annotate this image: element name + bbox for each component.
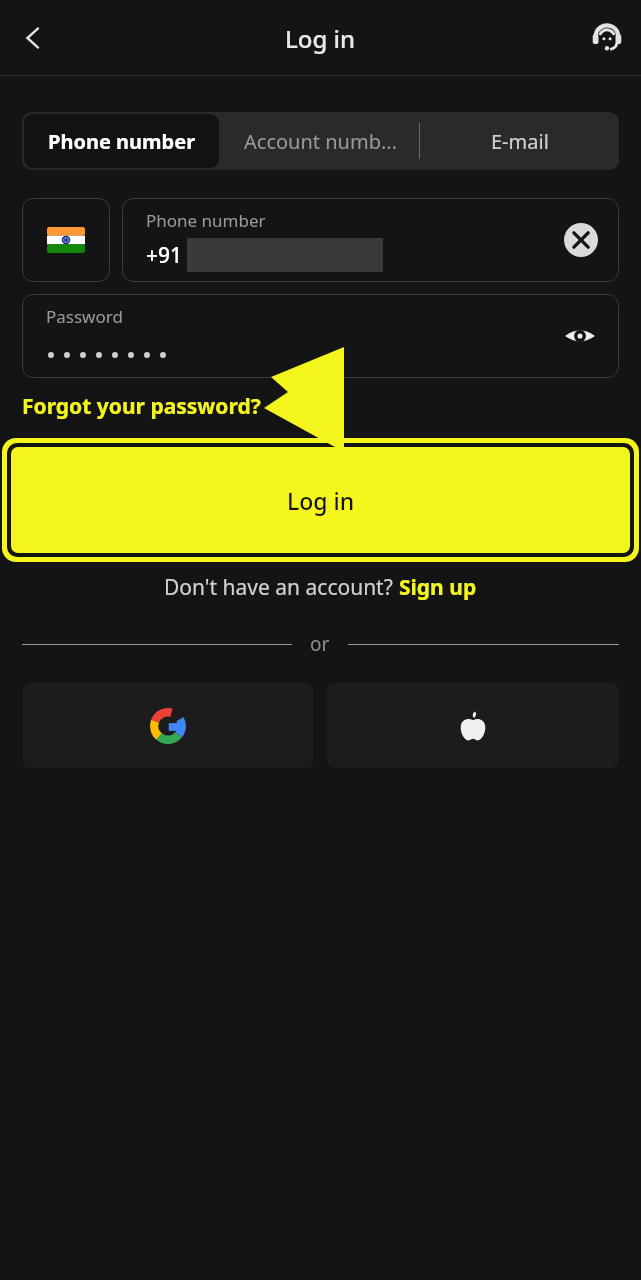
staticText: or: [310, 631, 330, 657]
button[interactable]: Account numb...: [221, 112, 420, 170]
button[interactable]: Back: [6, 11, 60, 65]
button[interactable]: Forgot your password?: [22, 392, 261, 421]
button[interactable]: Sign in with Google: [22, 683, 314, 768]
button[interactable]: Sign in with Apple: [327, 683, 619, 768]
button[interactable]: Password: [22, 294, 619, 378]
staticText: Don't have an account?: [164, 573, 399, 602]
staticText: Account numb...: [244, 128, 398, 155]
button[interactable]: E-mail: [420, 112, 619, 170]
button[interactable]: Phone number: [122, 198, 619, 282]
button[interactable]: Log in: [11, 447, 630, 553]
staticText: +91: [146, 241, 183, 270]
button[interactable]: Clear phone number: [561, 220, 601, 260]
staticText: E-mail: [491, 128, 549, 155]
button[interactable]: Customer support: [581, 12, 633, 64]
staticText: Phone number: [146, 209, 266, 232]
staticText: Phone number: [48, 128, 196, 155]
button[interactable]: Select country code: [22, 198, 110, 282]
button[interactable]: Sign up: [399, 573, 477, 602]
staticText: Log in: [285, 22, 356, 55]
staticText: Password: [46, 305, 123, 328]
button[interactable]: Show password: [559, 315, 601, 357]
button[interactable]: Phone number: [24, 114, 219, 168]
staticText: Log in: [287, 485, 355, 516]
